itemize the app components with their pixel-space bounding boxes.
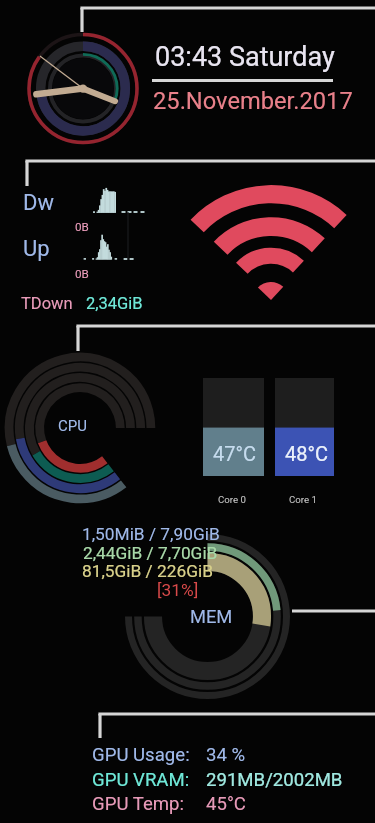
staticText: 81,5GiB / 226GiB bbox=[82, 561, 213, 581]
staticText: CPU bbox=[58, 417, 87, 435]
staticText: 03:43 Saturday bbox=[155, 41, 335, 73]
staticText: 47°C bbox=[213, 442, 256, 465]
staticText: Up bbox=[23, 236, 50, 262]
staticText: 34 % bbox=[206, 744, 246, 766]
staticText: TDown bbox=[21, 294, 73, 313]
staticText: 45°C bbox=[206, 793, 246, 815]
staticText: 0B bbox=[75, 267, 89, 281]
staticText: 291MB/2002MB bbox=[206, 769, 343, 791]
staticText: GPU Temp: bbox=[92, 793, 185, 815]
staticText: 0B bbox=[75, 220, 89, 234]
staticText: Core 1 bbox=[289, 494, 318, 505]
staticText: MEM bbox=[190, 606, 233, 627]
staticText: 1,50MiB / 7,90GiB bbox=[82, 524, 220, 544]
staticText: Dw bbox=[23, 190, 54, 216]
staticText: 2,44GiB / 7,70GiB bbox=[83, 543, 218, 563]
staticText: GPU Usage: bbox=[92, 744, 190, 766]
staticText: 2,34GiB bbox=[86, 294, 143, 313]
staticText: 48°C bbox=[285, 442, 328, 465]
staticText: 25.November.2017 bbox=[153, 87, 353, 115]
staticText: GPU VRAM: bbox=[92, 769, 190, 791]
staticText: Core 0 bbox=[218, 494, 247, 505]
staticText: [31%] bbox=[157, 580, 199, 600]
